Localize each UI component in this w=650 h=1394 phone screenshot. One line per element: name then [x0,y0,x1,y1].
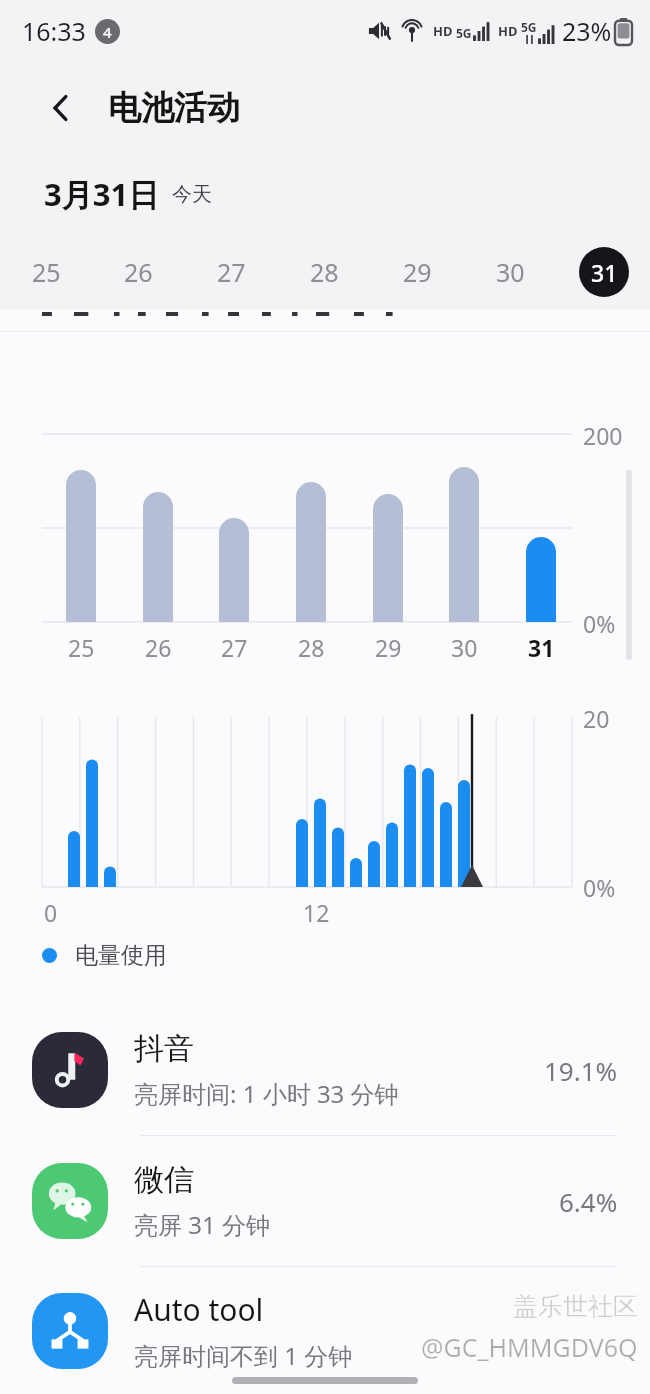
staticText: 亮屏时间: 1 小时 33 分钟 [134,1077,399,1110]
staticText: 28 [310,255,339,289]
staticText: @GC_HMMGDV6Q [421,1330,638,1364]
staticText: 3月31日 [44,173,160,215]
button[interactable]: 29 [371,234,464,310]
staticText: 微信 [134,1161,194,1199]
staticText: 0% [583,872,616,903]
button[interactable]: 抖音 [0,1005,650,1135]
staticText: 20 [583,703,610,734]
staticText: Auto tool [134,1289,264,1330]
staticText: 31 [528,632,555,663]
staticText: 27 [221,632,248,663]
staticText: 23% [562,14,612,48]
staticText: 4 [103,22,112,42]
staticText: 200 [583,420,623,451]
button[interactable]: 30 [464,234,557,310]
staticText: 27 [217,255,246,289]
staticText: 19.1% [544,1053,618,1088]
staticText: HD [433,22,453,40]
staticText: 25 [32,255,61,289]
staticText: 30 [451,632,478,663]
staticText: 盖乐世社区 [513,1291,638,1322]
staticText: 抖音 [134,1030,194,1068]
staticText: 5G [456,25,472,41]
staticText: 25 [68,632,95,663]
staticText: 16:33 [22,14,86,48]
staticText: 亮屏 31 分钟 [134,1208,270,1241]
button[interactable]: 25 [0,234,92,310]
button[interactable]: 微信 [0,1136,650,1266]
staticText: 26 [145,632,172,663]
button[interactable]: 28 [278,234,371,310]
staticText: 6.4% [559,1184,618,1219]
staticText: HD [498,22,518,40]
button[interactable]: 26 [92,234,185,310]
button[interactable]: 返回 [32,79,90,137]
staticText: 5G [521,19,537,35]
staticText: 12 [303,897,330,928]
staticText: 30 [496,255,525,289]
staticText: 31 [591,257,618,288]
staticText: 今天 [172,182,212,207]
staticText: 28 [298,632,325,663]
staticText: 电池活动 [108,87,240,129]
staticText: 0 [44,897,58,928]
staticText: 26 [124,255,153,289]
button[interactable]: Auto tool [0,1267,650,1394]
staticText: 亮屏时间不到 1 分钟 [134,1339,353,1372]
button[interactable]: 27 [185,234,278,310]
staticText: 电量使用 [75,941,167,970]
button[interactable]: 31 [557,234,650,310]
staticText: 29 [403,255,432,289]
staticText: 29 [375,632,402,663]
staticText: 0% [583,608,616,639]
